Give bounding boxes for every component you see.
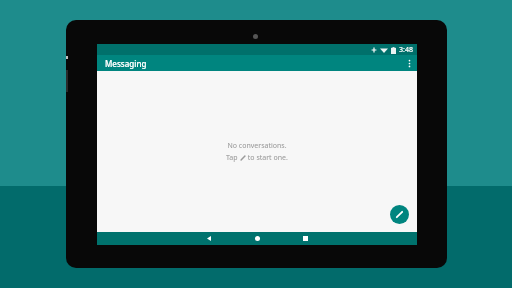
staticText: 3:48 [399, 45, 413, 55]
staticText: No conversations. [227, 141, 287, 151]
button[interactable]: More options [401, 55, 417, 71]
button[interactable]: Back [194, 232, 224, 245]
button[interactable]: Home [242, 232, 272, 245]
staticText: to start one. [246, 153, 288, 163]
button[interactable]: Compose new message [390, 205, 409, 224]
button[interactable]: Recent apps [290, 232, 320, 245]
staticText: Messaging [105, 58, 147, 69]
staticText: Tap [226, 153, 240, 163]
